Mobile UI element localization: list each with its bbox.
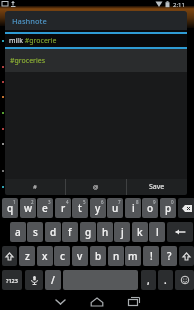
button[interactable] bbox=[167, 222, 193, 242]
button[interactable]: k bbox=[132, 222, 148, 242]
button[interactable]: q bbox=[2, 198, 18, 218]
staticText: / bbox=[51, 273, 55, 287]
button[interactable]: #groceries bbox=[5, 49, 187, 72]
button[interactable]: ?123 bbox=[2, 270, 22, 290]
staticText: g bbox=[85, 225, 92, 239]
staticText: k bbox=[137, 225, 143, 239]
button[interactable]: y bbox=[90, 198, 106, 218]
staticText: b bbox=[95, 249, 102, 263]
staticText: 2:11 bbox=[173, 1, 185, 9]
staticText: l bbox=[156, 225, 159, 239]
staticText: o bbox=[147, 201, 154, 215]
staticText: p bbox=[165, 201, 172, 215]
button[interactable]: w bbox=[20, 198, 36, 218]
staticText: n bbox=[113, 249, 120, 263]
staticText: 4 bbox=[66, 199, 69, 205]
button[interactable] bbox=[178, 198, 194, 218]
staticText: j bbox=[121, 225, 124, 239]
staticText: u bbox=[112, 201, 119, 215]
button[interactable]: ? bbox=[161, 246, 177, 266]
button[interactable]: u bbox=[107, 198, 123, 218]
button[interactable]: z bbox=[19, 246, 35, 266]
button[interactable]: a bbox=[10, 222, 26, 242]
button[interactable] bbox=[25, 270, 43, 290]
staticText: w bbox=[24, 201, 33, 215]
button[interactable]: m bbox=[125, 246, 141, 266]
button[interactable] bbox=[63, 270, 138, 290]
staticText: f bbox=[68, 225, 72, 239]
staticText: # bbox=[33, 183, 37, 191]
staticText: 5 bbox=[83, 199, 86, 205]
staticText: 1 bbox=[13, 199, 16, 205]
staticText: 3 bbox=[48, 199, 51, 205]
staticText: v bbox=[77, 249, 83, 263]
staticText: @ bbox=[93, 183, 99, 191]
staticText: milk #grocerie bbox=[9, 36, 57, 46]
staticText: m bbox=[128, 249, 138, 263]
button[interactable]: g bbox=[80, 222, 96, 242]
staticText: d bbox=[50, 225, 57, 239]
staticText: 0 bbox=[171, 199, 174, 205]
button[interactable]: j bbox=[114, 222, 130, 242]
staticText: a bbox=[15, 225, 21, 239]
button[interactable]: . bbox=[158, 270, 173, 290]
button[interactable]: t bbox=[72, 198, 88, 218]
staticText: h bbox=[102, 225, 109, 239]
button[interactable]: e bbox=[37, 198, 53, 218]
button[interactable]: x bbox=[37, 246, 53, 266]
button[interactable]: b bbox=[90, 246, 106, 266]
button[interactable]: r bbox=[55, 198, 71, 218]
button[interactable]: f bbox=[62, 222, 78, 242]
staticText: #groceries bbox=[10, 56, 46, 66]
button[interactable] bbox=[175, 270, 194, 290]
staticText: 8 bbox=[136, 199, 139, 205]
button[interactable] bbox=[179, 246, 194, 266]
staticText: t bbox=[78, 201, 82, 215]
staticText: Hashnote bbox=[12, 16, 47, 26]
staticText: e bbox=[42, 201, 48, 215]
staticText: z bbox=[25, 249, 30, 263]
button[interactable]: s bbox=[27, 222, 43, 242]
staticText: 2 bbox=[31, 199, 34, 205]
staticText: ? bbox=[167, 249, 172, 263]
staticText: , bbox=[147, 273, 150, 287]
staticText: 7 bbox=[118, 199, 121, 205]
staticText: q bbox=[7, 201, 14, 215]
button[interactable]: i bbox=[125, 198, 141, 218]
button[interactable]: d bbox=[45, 222, 61, 242]
button[interactable] bbox=[2, 246, 17, 266]
button[interactable]: p bbox=[160, 198, 176, 218]
button[interactable]: / bbox=[45, 270, 61, 290]
staticText: s bbox=[33, 225, 38, 239]
button[interactable]: # bbox=[5, 179, 65, 195]
button[interactable]: n bbox=[108, 246, 124, 266]
staticText: 6 bbox=[101, 199, 104, 205]
button[interactable]: h bbox=[97, 222, 113, 242]
staticText: ! bbox=[150, 249, 153, 263]
staticText: 9 bbox=[153, 199, 156, 205]
button[interactable]: o bbox=[142, 198, 158, 218]
button[interactable]: , bbox=[141, 270, 156, 290]
button[interactable]: @ bbox=[66, 179, 126, 195]
staticText: c bbox=[60, 249, 65, 263]
button[interactable]: c bbox=[54, 246, 70, 266]
button[interactable]: l bbox=[149, 222, 165, 242]
staticText: r bbox=[61, 201, 66, 215]
button[interactable]: Save bbox=[127, 179, 187, 195]
staticText: i bbox=[132, 201, 135, 215]
staticText: Save bbox=[149, 182, 165, 192]
staticText: y bbox=[95, 201, 101, 215]
staticText: ?123 bbox=[6, 277, 18, 284]
button[interactable]: v bbox=[72, 246, 88, 266]
button[interactable]: ! bbox=[143, 246, 159, 266]
staticText: x bbox=[42, 249, 48, 263]
staticText: . bbox=[164, 273, 167, 287]
button[interactable]: milk #grocerie bbox=[5, 34, 187, 47]
button[interactable]: Hashnote bbox=[5, 11, 187, 30]
